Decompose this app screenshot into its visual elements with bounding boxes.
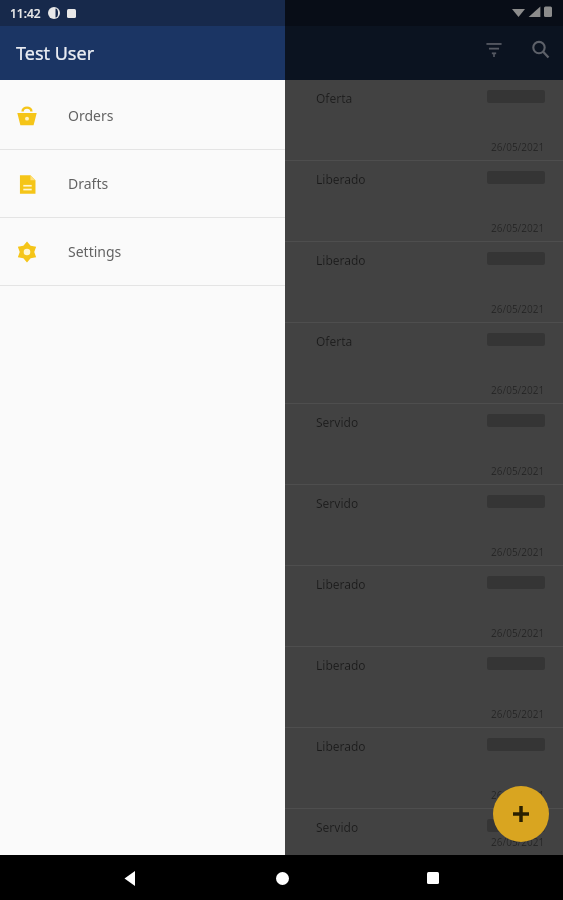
staticText: Liberado <box>316 738 366 754</box>
button[interactable]: Home <box>260 856 304 900</box>
button[interactable]: Search <box>524 33 556 65</box>
staticText: Orders <box>68 106 114 125</box>
staticText: 26/05/2021 <box>491 707 545 721</box>
button[interactable]: Add <box>493 786 549 842</box>
staticText: Oferta <box>316 90 353 106</box>
staticText: 11:42 <box>10 5 41 21</box>
staticText: Drafts <box>68 174 109 193</box>
staticText: 26/05/2021 <box>491 545 545 559</box>
staticText: Servido <box>316 414 359 430</box>
staticText: Liberado <box>316 252 366 268</box>
button[interactable]: Back <box>108 856 152 900</box>
staticText: Liberado <box>316 171 366 187</box>
button[interactable]: Filter <box>478 33 510 65</box>
staticText: 26/05/2021 <box>491 140 545 154</box>
button[interactable]: Settings <box>0 218 285 285</box>
staticText: Servido <box>316 819 359 835</box>
staticText: 26/05/2021 <box>491 302 545 316</box>
staticText: 26/05/2021 <box>491 626 545 640</box>
button[interactable]: Drafts <box>0 150 285 217</box>
staticText: Servido <box>316 495 359 511</box>
button[interactable]: Recents <box>411 856 455 900</box>
staticText: Oferta <box>316 333 353 349</box>
button[interactable]: Orders <box>0 82 285 149</box>
staticText: 26/05/2021 <box>491 835 545 849</box>
staticText: 26/05/2021 <box>491 383 545 397</box>
staticText: Test User <box>16 41 95 66</box>
staticText: 26/05/2021 <box>491 788 545 802</box>
staticText: Liberado <box>316 576 366 592</box>
staticText: Settings <box>68 242 122 261</box>
staticText: 26/05/2021 <box>491 221 545 235</box>
staticText: Liberado <box>316 657 366 673</box>
staticText: 26/05/2021 <box>491 464 545 478</box>
